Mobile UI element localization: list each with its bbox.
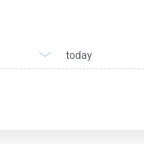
staticText: today: [66, 49, 92, 61]
button[interactable]: Collapse today: [0, 43, 144, 65]
other: Collapse today: [39, 52, 51, 57]
